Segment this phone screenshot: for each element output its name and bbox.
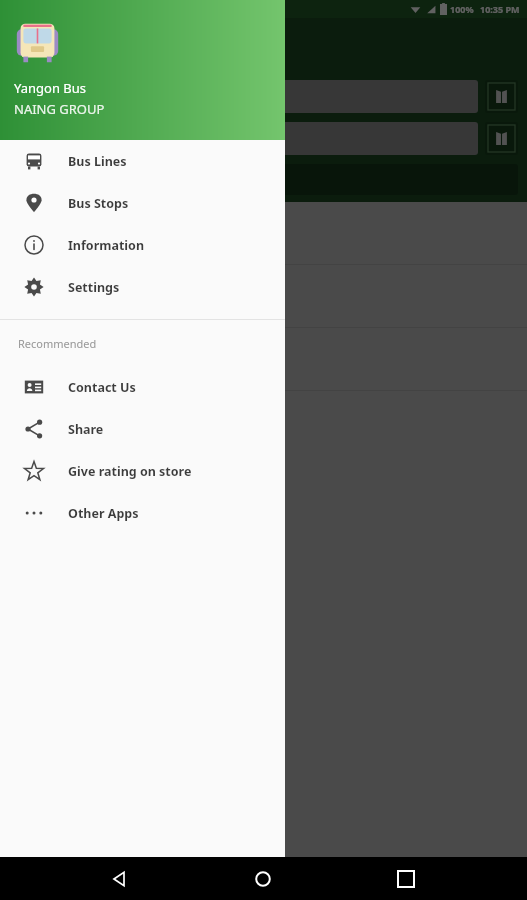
staticText: Give rating on store: [68, 463, 192, 480]
staticText: Other Apps: [68, 505, 139, 522]
button[interactable]: ရန်ကုန်(မြို့ညွှန်): [9, 80, 478, 113]
staticText: NAING GROUP: [14, 100, 105, 118]
button[interactable]: Recent apps: [384, 857, 428, 900]
button[interactable]: Give rating on store: [0, 450, 285, 492]
staticText: ရန်ကုန်(မြို့ညွှန်): [9, 87, 89, 107]
staticText: အင်းစိန်သိုလ်လမ်း၊ လှိုင်သာယာ): [13, 362, 151, 381]
staticText: Yangon Bus: [14, 79, 87, 97]
staticText: Share: [68, 421, 104, 438]
button[interactable]: Bus Lines: [0, 140, 285, 182]
button[interactable]: ၃: [0, 328, 527, 391]
button[interactable]: အင်းစိန်တက္ကသိုလ်လမ်း လှိုင်: [9, 122, 478, 155]
staticText: 100%: [450, 3, 474, 15]
staticText: Bus Lines: [68, 153, 127, 170]
button[interactable]: Share: [0, 408, 285, 450]
button[interactable]: Home: [241, 857, 285, 900]
button[interactable]: Bus Stops: [0, 182, 285, 224]
button[interactable]: Open map: [485, 80, 518, 113]
staticText: ၃: [13, 339, 21, 358]
button[interactable]: Other Apps: [0, 492, 285, 534]
staticText: အင်းစိန်သိုလ်လမ်း၊ လှိုင်သာယာ): [13, 236, 151, 255]
button[interactable]: Back: [98, 857, 142, 900]
button[interactable]: ၁ (ရန်ကုန်): [0, 202, 527, 265]
staticText: Recommended: [18, 336, 97, 351]
button[interactable]: Information: [0, 224, 285, 266]
staticText: အင်းစိန်တက္ကသိုလ်လမ်း လှိုင်: [9, 129, 149, 149]
staticText: Contact Us: [68, 379, 136, 396]
button[interactable]: ၂: [0, 265, 527, 328]
staticText: 10:35 PM: [480, 3, 520, 15]
button[interactable]: Contact Us: [0, 366, 285, 408]
staticText: Bus Stops: [68, 195, 129, 212]
button[interactable]: Settings: [0, 266, 285, 308]
button[interactable]: Find Route: [9, 164, 518, 195]
staticText: Information: [68, 237, 145, 254]
button[interactable]: Open map: [485, 122, 518, 155]
staticText: Settings: [68, 279, 120, 296]
